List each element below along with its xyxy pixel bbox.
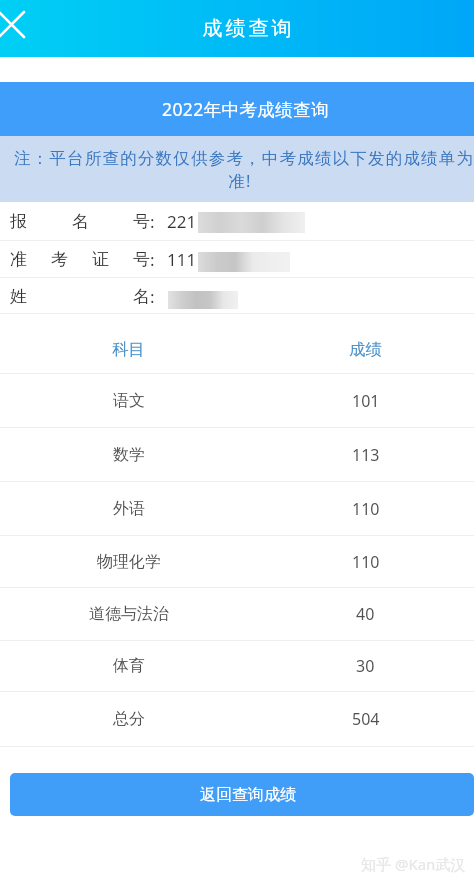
button[interactable]: 道德与法治 [0, 588, 474, 640]
staticText: 报 [10, 211, 27, 232]
staticText: 证 [92, 249, 109, 270]
staticText: 科目 [112, 339, 145, 360]
staticText: 221 [167, 210, 197, 233]
staticText: 名 [133, 286, 150, 307]
staticText: 考 [51, 249, 68, 270]
staticText: : [150, 210, 155, 233]
staticText: : [150, 248, 155, 271]
staticText: 名 [72, 211, 89, 232]
button[interactable]: 语文 [0, 374, 474, 427]
staticText: 数学 [113, 445, 145, 465]
staticText: 总分 [113, 709, 145, 729]
staticText: 110 [352, 498, 380, 520]
staticText: 准! [6, 169, 474, 192]
button[interactable]: 体育 [0, 641, 474, 691]
staticText: : [150, 285, 155, 308]
button[interactable]: 数学 [0, 428, 474, 481]
staticText: 注：平台所查的分数仅供参考，中考成绩以下发的成绩单为 [14, 148, 474, 169]
staticText: 物理化学 [97, 552, 161, 572]
staticText: 111 [167, 248, 197, 271]
staticText: 30 [356, 655, 375, 677]
staticText: 返回查询成绩 [200, 785, 296, 805]
button[interactable]: 科目 [0, 314, 474, 373]
staticText: 成绩查询 [201, 16, 293, 41]
staticText: 准 [10, 249, 27, 270]
staticText: 成绩 [349, 339, 382, 360]
staticText: 504 [352, 708, 380, 730]
staticText: 101 [352, 390, 380, 412]
button[interactable]: Close [0, 0, 40, 57]
button[interactable]: 外语 [0, 482, 474, 535]
staticText: 号 [133, 211, 150, 232]
staticText: 姓 [10, 286, 27, 307]
button[interactable]: 物理化学 [0, 536, 474, 587]
button[interactable]: 总分 [0, 692, 474, 746]
staticText: 110 [352, 551, 380, 573]
button[interactable]: 返回查询成绩 [10, 773, 474, 816]
staticText: 外语 [113, 499, 145, 519]
staticText: 知乎 @Kan武汉 [361, 854, 466, 874]
staticText: 道德与法治 [89, 604, 169, 624]
staticText: 号 [133, 249, 150, 270]
staticText: 113 [352, 444, 380, 466]
staticText: 2022年中考成绩查询 [162, 97, 329, 121]
staticText: 体育 [113, 656, 145, 676]
staticText: 40 [356, 603, 375, 625]
staticText: 语文 [113, 391, 145, 411]
